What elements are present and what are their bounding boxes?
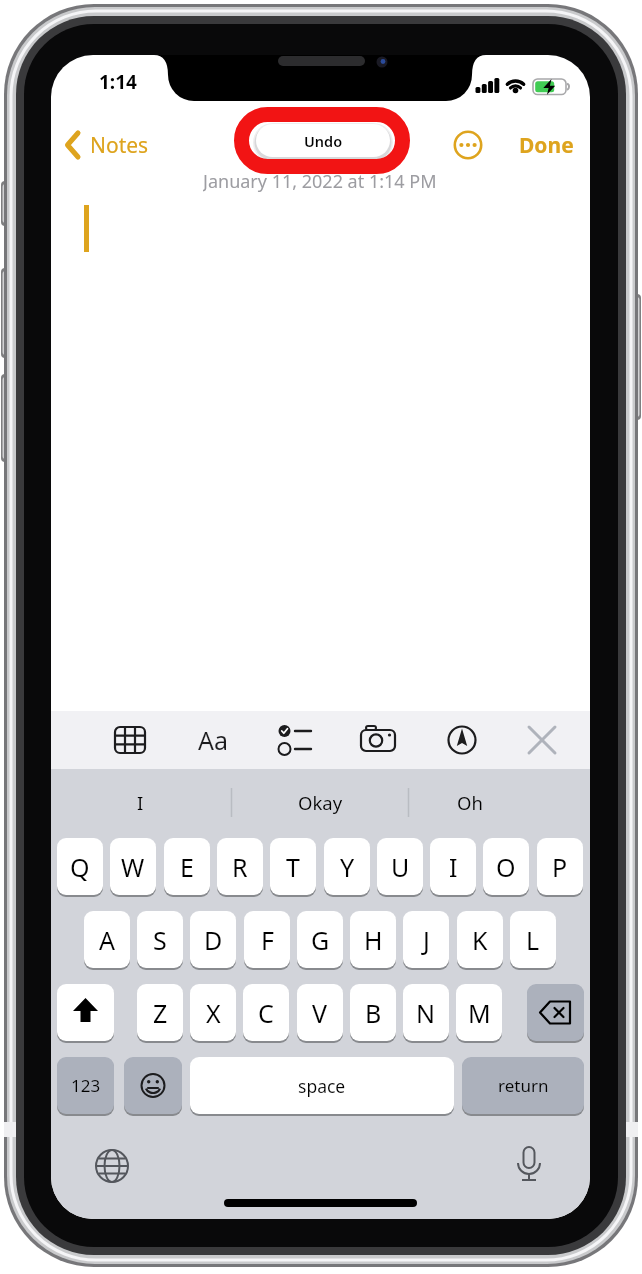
button[interactable]: G <box>297 911 343 968</box>
staticText: return <box>498 1074 549 1097</box>
button[interactable]: W <box>110 838 156 895</box>
button[interactable] <box>91 1145 133 1187</box>
staticText: January 11, 2022 at 1:14 PM <box>203 169 437 193</box>
staticText: 123 <box>71 1074 101 1097</box>
button[interactable]: O <box>483 838 529 895</box>
staticText: Okay <box>298 790 343 815</box>
button[interactable] <box>452 129 484 161</box>
staticText: L <box>526 923 540 957</box>
button[interactable] <box>273 718 317 762</box>
button[interactable] <box>124 1057 182 1114</box>
button[interactable]: 123 <box>57 1057 114 1114</box>
button[interactable] <box>508 1143 550 1189</box>
button[interactable]: Y <box>324 838 370 895</box>
button[interactable]: C <box>243 984 289 1041</box>
button[interactable]: T <box>270 838 316 895</box>
staticText: J <box>423 923 430 957</box>
button[interactable]: M <box>456 984 502 1041</box>
button[interactable]: A <box>84 911 130 968</box>
staticText: A <box>99 923 115 957</box>
button[interactable] <box>527 984 584 1041</box>
staticText: M <box>468 996 491 1030</box>
button[interactable]: Notes <box>65 127 161 163</box>
button[interactable]: L <box>510 911 556 968</box>
button[interactable]: B <box>350 984 396 1041</box>
button[interactable]: F <box>244 911 290 968</box>
button[interactable]: Q <box>57 838 103 895</box>
staticText: U <box>391 850 410 884</box>
button[interactable]: K <box>457 911 503 968</box>
button[interactable]: space <box>190 1057 454 1114</box>
staticText: Z <box>153 996 168 1030</box>
button[interactable]: I <box>430 838 476 895</box>
button[interactable]: J <box>403 911 449 968</box>
staticText: G <box>311 923 330 957</box>
button[interactable]: Oh <box>395 780 545 824</box>
staticText: E <box>180 850 194 884</box>
staticText: T <box>286 850 300 884</box>
staticText: O <box>496 850 516 884</box>
button[interactable]: R <box>217 838 263 895</box>
button[interactable]: X <box>190 984 236 1041</box>
button[interactable]: Z <box>137 984 183 1041</box>
button[interactable]: I <box>65 780 215 824</box>
staticText: Y <box>340 850 355 884</box>
button[interactable]: Okay <box>245 780 395 824</box>
button[interactable]: Undo <box>256 124 390 157</box>
staticText: S <box>153 923 167 957</box>
staticText: Aa <box>198 723 229 757</box>
staticText: space <box>298 1074 346 1098</box>
button[interactable]: Aa <box>191 718 235 762</box>
staticText: H <box>364 923 383 957</box>
staticText: I <box>449 850 458 884</box>
staticText: N <box>416 996 436 1030</box>
button[interactable]: V <box>297 984 343 1041</box>
staticText: W <box>121 850 145 884</box>
button[interactable] <box>57 984 114 1041</box>
staticText: Oh <box>457 790 483 815</box>
staticText: V <box>312 996 328 1030</box>
staticText: X <box>206 996 221 1030</box>
staticText: F <box>261 923 274 957</box>
staticText: Undo <box>304 131 343 151</box>
button[interactable]: D <box>190 911 236 968</box>
button[interactable]: H <box>350 911 396 968</box>
staticText: Done <box>519 131 574 160</box>
staticText: K <box>472 923 488 957</box>
button[interactable]: P <box>537 838 583 895</box>
button[interactable]: return <box>462 1057 584 1114</box>
staticText: D <box>204 923 223 957</box>
button[interactable]: U <box>377 838 423 895</box>
staticText: C <box>258 996 274 1030</box>
button[interactable]: N <box>403 984 449 1041</box>
staticText: Q <box>70 850 90 884</box>
button[interactable] <box>440 718 484 762</box>
button[interactable] <box>108 718 152 762</box>
staticText: I <box>137 790 144 815</box>
button[interactable]: E <box>164 838 210 895</box>
button[interactable]: Done <box>506 129 586 161</box>
staticText: P <box>552 850 568 884</box>
staticText: R <box>232 850 248 884</box>
staticText: B <box>365 996 382 1030</box>
button[interactable]: S <box>137 911 183 968</box>
button[interactable] <box>520 718 564 762</box>
staticText: Notes <box>90 131 149 160</box>
staticText: 1:14 <box>99 69 137 95</box>
button[interactable] <box>356 718 400 762</box>
